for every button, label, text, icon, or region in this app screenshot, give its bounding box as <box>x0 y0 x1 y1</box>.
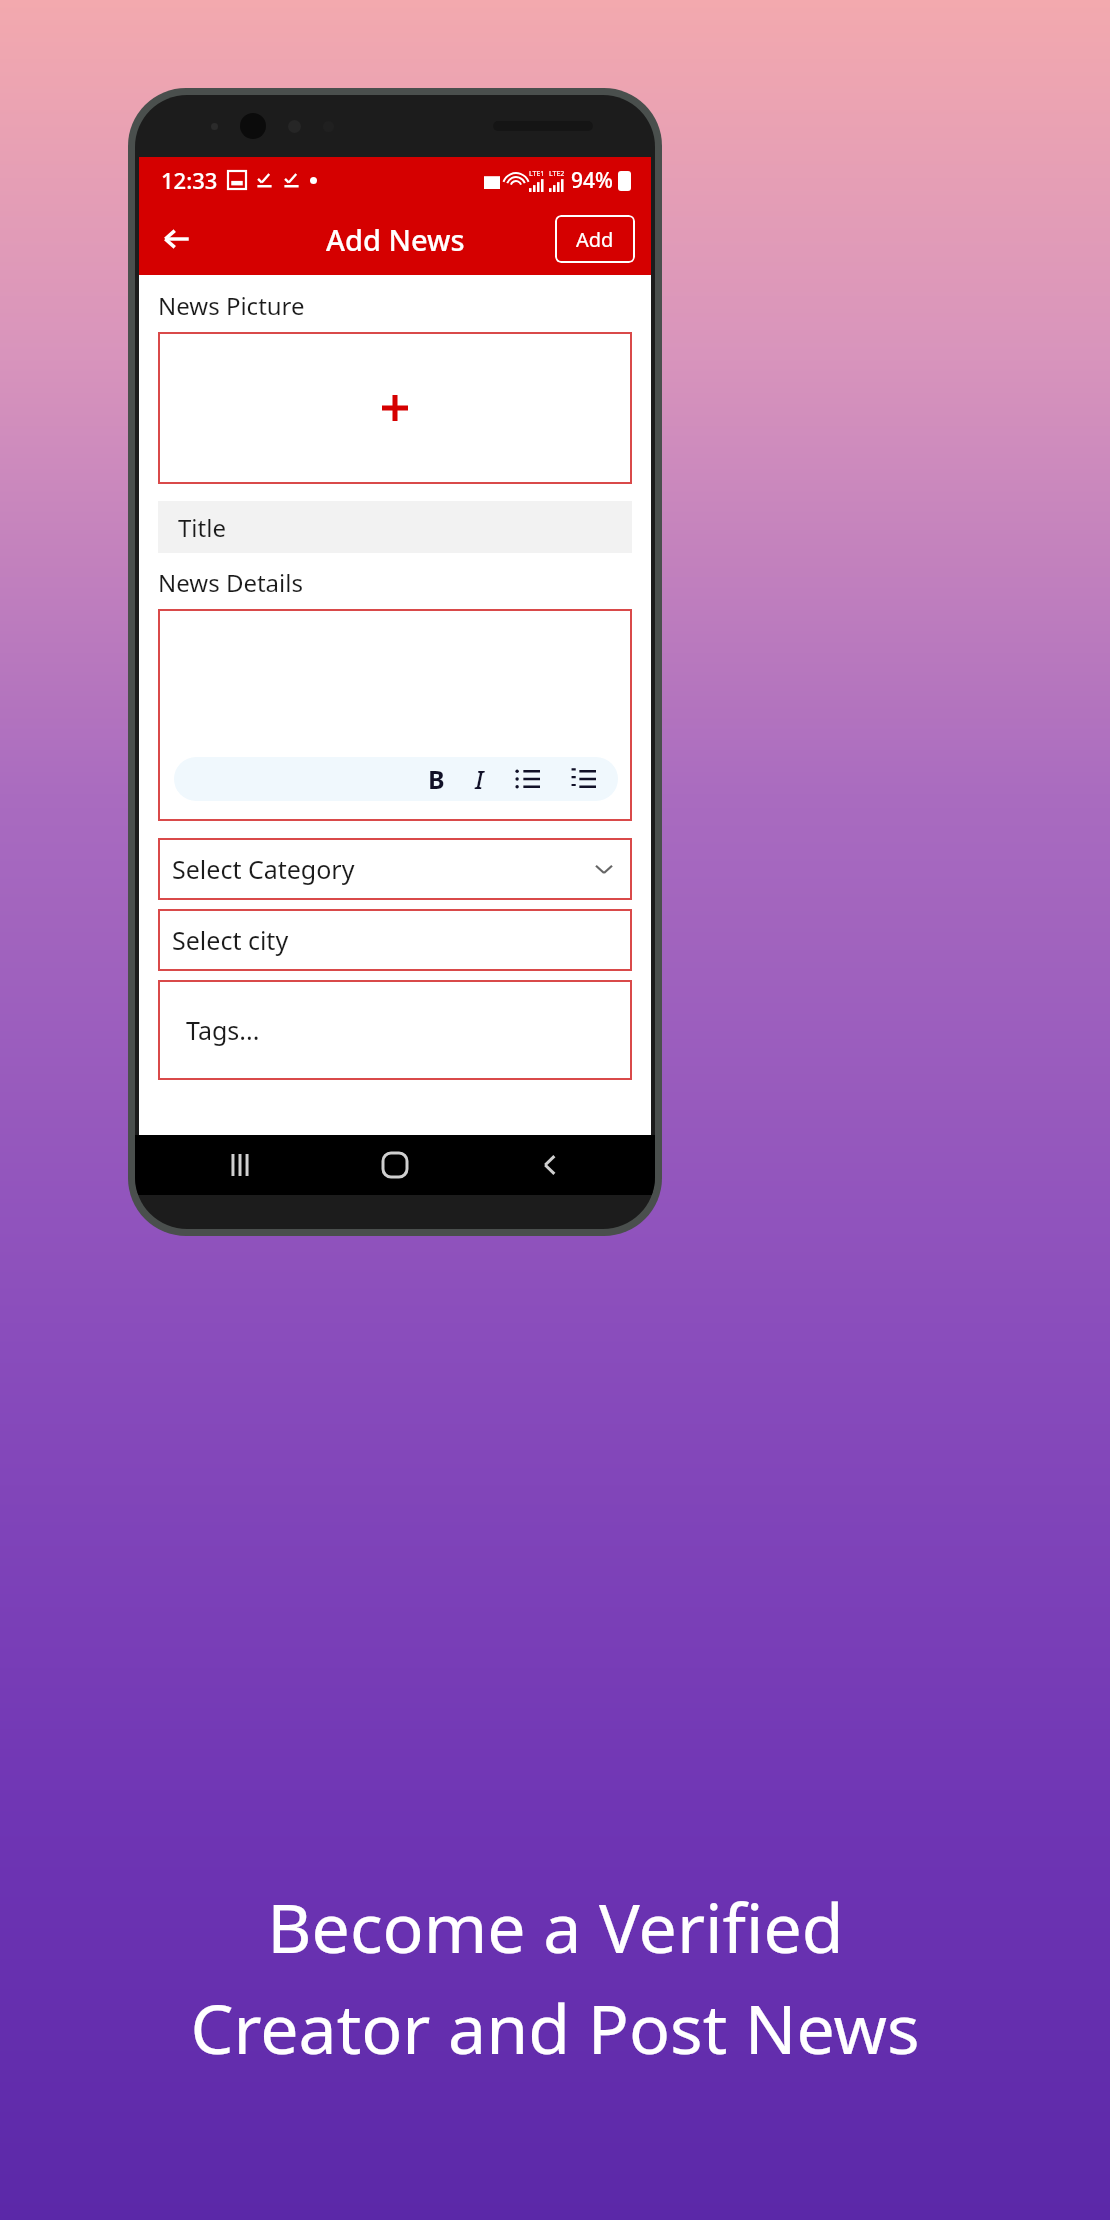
staticText: 12:33 <box>161 165 218 195</box>
button[interactable]: Select city <box>158 909 632 971</box>
button[interactable]: B <box>428 762 445 796</box>
button[interactable]: Select Category <box>158 838 632 900</box>
button[interactable]: Recents <box>218 1143 262 1187</box>
staticText: Select city <box>172 923 289 957</box>
staticText: LTE2 <box>549 169 565 179</box>
button[interactable]: Title <box>158 501 632 553</box>
staticText: Title <box>178 511 226 544</box>
staticText: Add <box>576 226 614 253</box>
button[interactable]: Bulleted list <box>514 766 540 792</box>
button[interactable]: I <box>475 762 484 796</box>
staticText: Add News <box>326 220 465 259</box>
button[interactable]: Home <box>373 1143 417 1187</box>
staticText: News Details <box>158 566 303 599</box>
button[interactable]: Numbered list <box>570 766 596 792</box>
staticText: 94% <box>571 166 613 195</box>
button[interactable]: Back <box>153 215 201 263</box>
staticText: Become a Verified <box>267 1880 844 1973</box>
button[interactable]: Add picture <box>158 332 632 484</box>
staticText: News Picture <box>158 289 305 322</box>
staticText: Creator and Post News <box>190 1981 920 2074</box>
staticText: LTE1 <box>529 169 545 179</box>
button[interactable]: Add <box>555 215 635 263</box>
button[interactable]: Tags... <box>158 980 632 1080</box>
button[interactable]: Back <box>528 1143 572 1187</box>
staticText: Tags... <box>186 1013 260 1047</box>
staticText: Select Category <box>172 852 355 886</box>
button[interactable]: B <box>158 609 632 821</box>
